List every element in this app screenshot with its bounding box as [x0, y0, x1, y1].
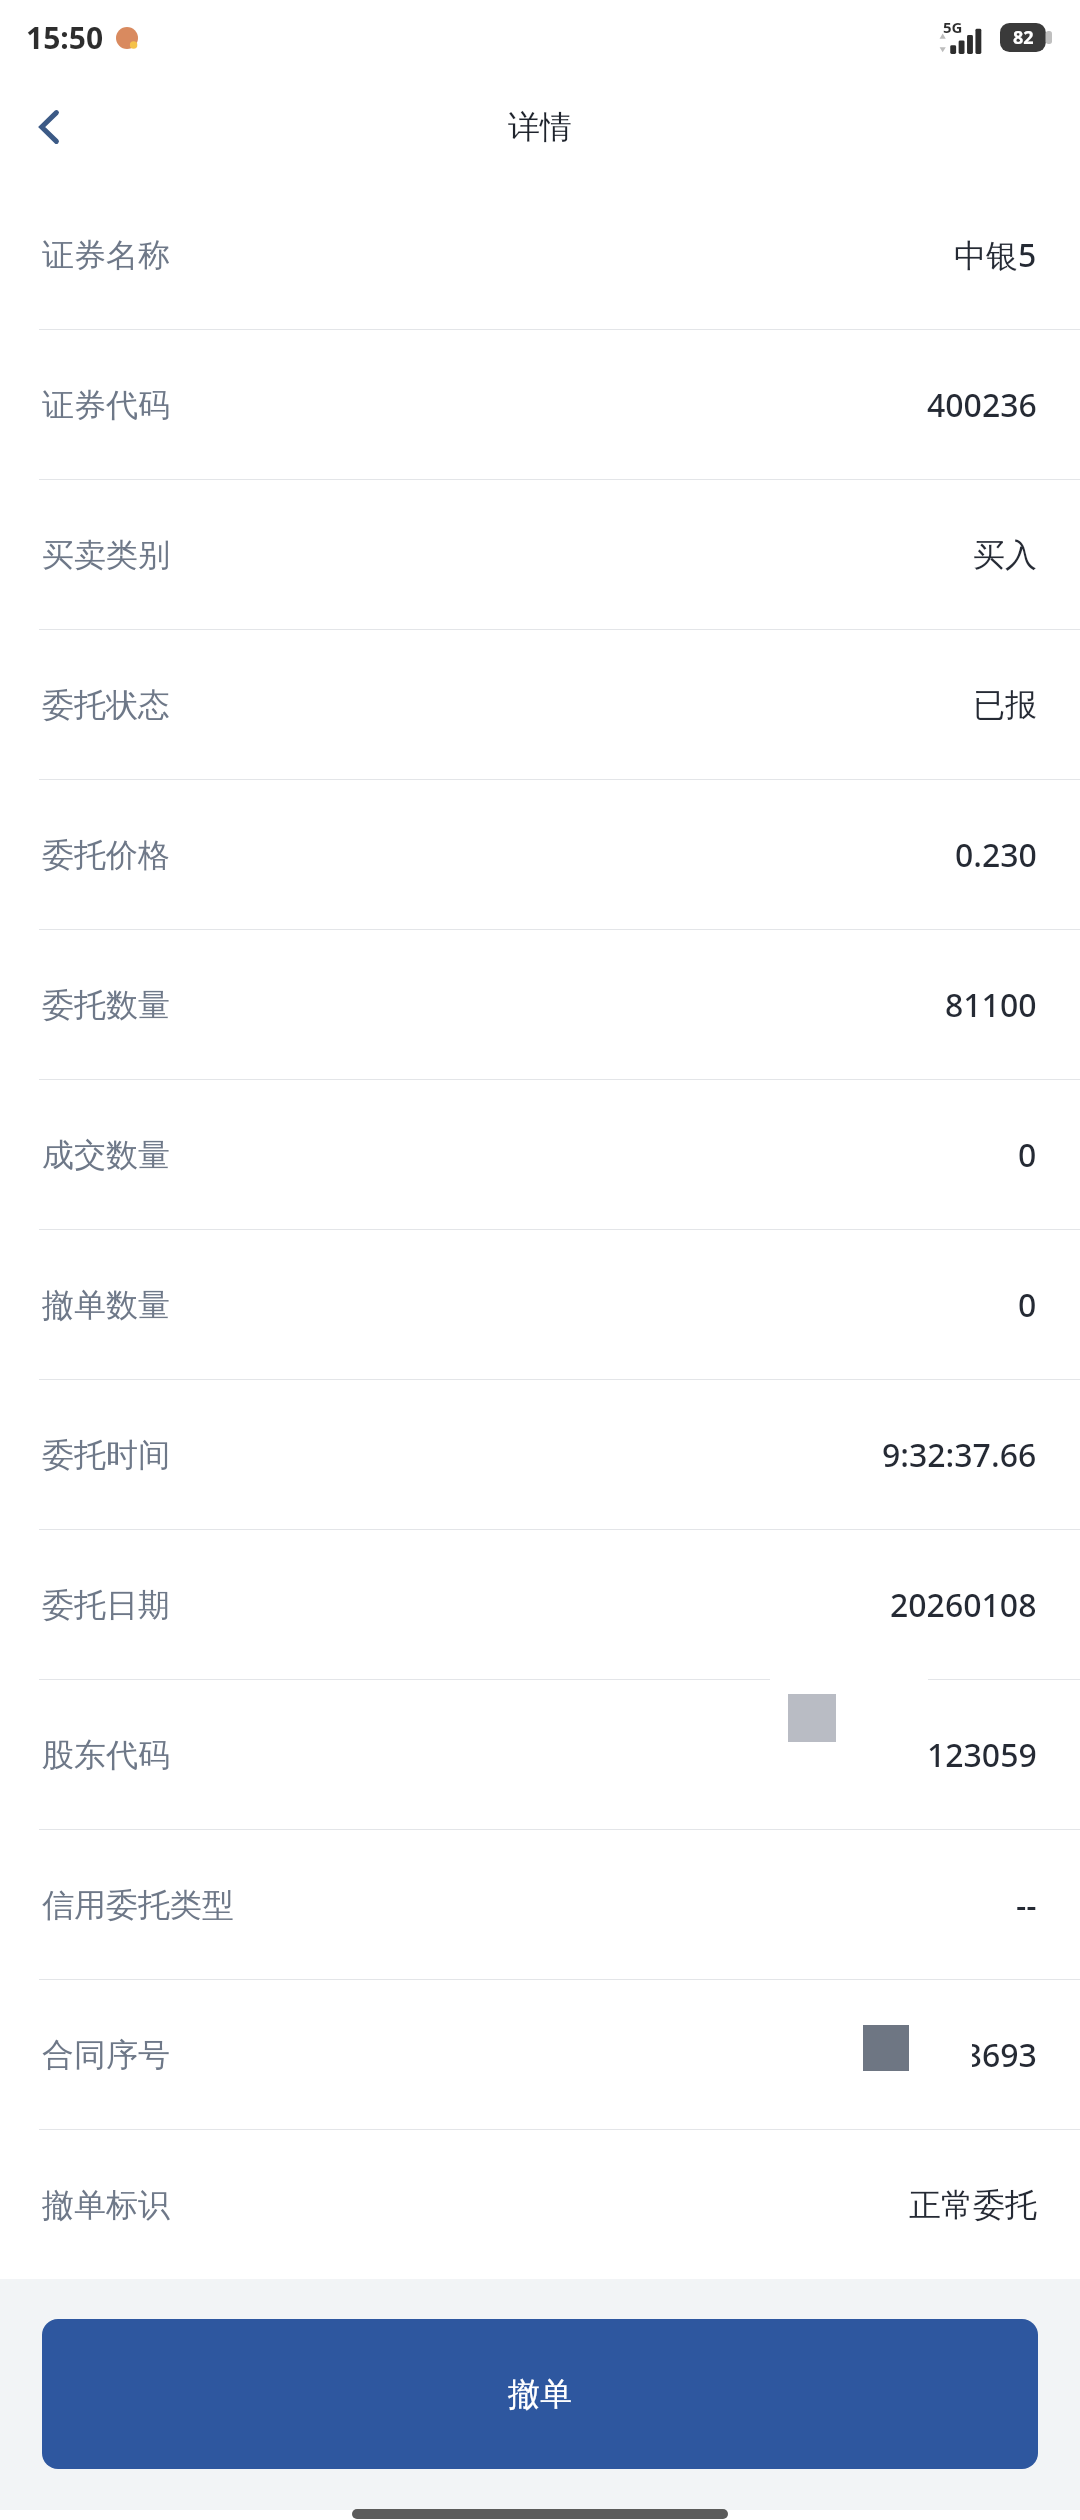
button[interactable]: 委托状态 — [0, 630, 1080, 779]
staticText: 合同序号 — [42, 2035, 170, 2075]
staticText: 0 — [1018, 1133, 1037, 1177]
staticText: 买卖类别 — [42, 535, 170, 575]
button[interactable]: 证券名称 — [0, 180, 1080, 329]
button[interactable]: 委托日期 — [0, 1530, 1080, 1679]
staticText: 中银5 — [954, 233, 1037, 277]
staticText: 已报 — [973, 685, 1037, 725]
staticText: 股东代码 — [42, 1735, 170, 1775]
button[interactable]: 买卖类别 — [0, 480, 1080, 629]
button[interactable]: 撤单标识 — [0, 2130, 1080, 2279]
button[interactable]: 股东代码 — [0, 1680, 1080, 1829]
button[interactable]: 信用委托类型 — [0, 1830, 1080, 1979]
button[interactable]: 委托价格 — [0, 780, 1080, 929]
staticText: 撤单数量 — [42, 1285, 170, 1325]
staticText: 撤单 — [508, 2374, 572, 2414]
staticText: 82 — [1013, 25, 1034, 50]
staticText: 5G — [943, 17, 963, 37]
staticText: 0.230 — [955, 833, 1037, 877]
staticText: 信用委托类型 — [42, 1885, 234, 1925]
button[interactable]: 委托数量 — [0, 930, 1080, 1079]
button[interactable]: 合同序号 — [0, 1980, 1080, 2129]
staticText: 委托价格 — [42, 835, 170, 875]
staticText: 15:50 — [26, 17, 104, 58]
staticText: 详情 — [508, 107, 572, 147]
button[interactable]: 成交数量 — [0, 1080, 1080, 1229]
staticText: 撤单标识 — [42, 2185, 170, 2225]
staticText: -- — [1016, 1883, 1037, 1927]
staticText: 0 — [1018, 1283, 1037, 1327]
staticText: 正常委托 — [909, 2185, 1037, 2225]
staticText: 成交数量 — [42, 1135, 170, 1175]
staticText: A123059 — [906, 1733, 1037, 1777]
staticText: 81100 — [945, 983, 1037, 1027]
staticText: 委托日期 — [42, 1585, 170, 1625]
staticText: 证券代码 — [42, 385, 170, 425]
staticText: 买入 — [973, 535, 1037, 575]
staticText: 委托时间 — [42, 1435, 170, 1475]
staticText: 128693 — [927, 2033, 1037, 2077]
button[interactable]: 撤单数量 — [0, 1230, 1080, 1379]
button[interactable]: 委托时间 — [0, 1380, 1080, 1529]
staticText: 委托状态 — [42, 685, 170, 725]
button[interactable]: 证券代码 — [0, 330, 1080, 479]
staticText: 400236 — [927, 383, 1037, 427]
staticText: 证券名称 — [42, 235, 170, 275]
button[interactable]: 撤单 — [42, 2319, 1038, 2469]
staticText: 委托数量 — [42, 985, 170, 1025]
staticText: 20260108 — [890, 1583, 1037, 1627]
staticText: 9:32:37.66 — [882, 1433, 1037, 1477]
button[interactable]: Back — [0, 77, 100, 177]
